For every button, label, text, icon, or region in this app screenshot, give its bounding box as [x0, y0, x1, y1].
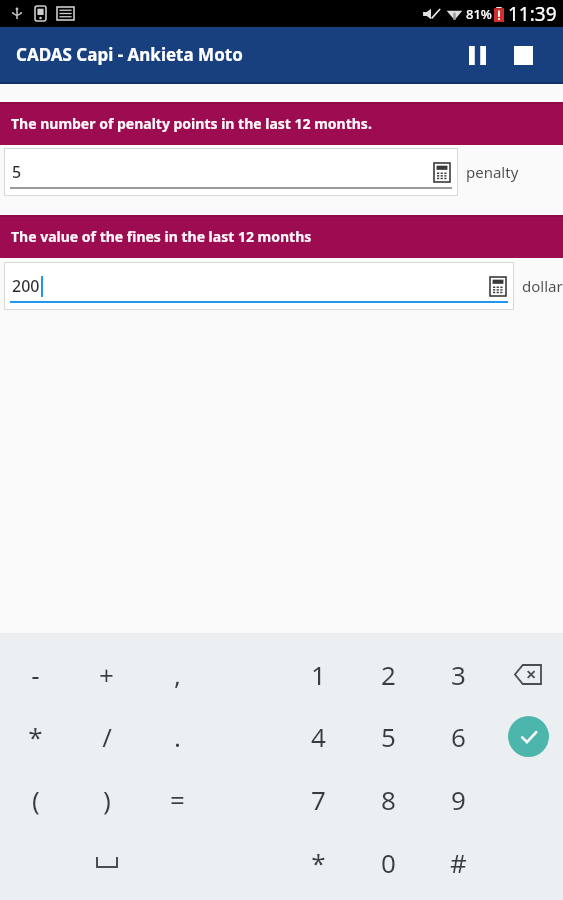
button[interactable]: 4 [283, 705, 353, 768]
button[interactable]: ) [71, 768, 142, 831]
staticText: 8 [381, 782, 396, 817]
staticText: . [174, 719, 181, 754]
button[interactable]: 9 [423, 768, 493, 831]
button[interactable]: Stop [501, 33, 545, 77]
button[interactable]: ( [0, 768, 71, 831]
button[interactable]: 5 [353, 705, 423, 768]
button[interactable]: 3 [423, 643, 493, 705]
button[interactable]: 1 [283, 643, 353, 705]
staticText: 2 [381, 657, 396, 692]
staticText: * [311, 845, 326, 880]
button[interactable]: The value of the fines in the last 12 mo… [0, 215, 563, 258]
other: Calculator [434, 163, 450, 182]
button[interactable]: Space [71, 831, 142, 894]
staticText: 9 [451, 782, 466, 817]
staticText: 81% [466, 5, 492, 23]
other: Calculator [490, 277, 506, 296]
staticText: 3 [451, 657, 466, 692]
button[interactable]: = [142, 768, 213, 831]
staticText: 11:39 [508, 1, 557, 27]
staticText: The number of penalty points in the last… [11, 114, 372, 133]
button[interactable]: 7 [283, 768, 353, 831]
button[interactable]: Backspace [493, 643, 563, 705]
button[interactable]: . [142, 705, 213, 768]
staticText: 7 [311, 782, 326, 817]
staticText: dollar [522, 276, 563, 296]
staticText: - [31, 657, 40, 692]
button[interactable]: , [142, 643, 213, 705]
button[interactable]: * [0, 705, 71, 768]
button[interactable]: * [283, 831, 353, 894]
staticText: * [28, 719, 43, 754]
button[interactable]: 0 [353, 831, 423, 894]
button[interactable]: 5 [4, 148, 458, 196]
button[interactable]: The number of penalty points in the last… [0, 102, 563, 145]
staticText: CADAS Capi - Ankieta Moto [16, 43, 243, 66]
staticText: # [450, 845, 467, 880]
button[interactable]: OK [493, 705, 563, 768]
staticText: 5 [381, 719, 396, 754]
staticText: 200 [12, 275, 40, 297]
button[interactable]: 8 [353, 768, 423, 831]
staticText: ) [103, 782, 111, 817]
button[interactable]: Pause [455, 33, 499, 77]
staticText: 5 [12, 161, 22, 183]
staticText: 1 [311, 657, 326, 692]
staticText: penalty points [466, 162, 563, 182]
staticText: The value of the fines in the last 12 mo… [11, 227, 312, 246]
button[interactable]: 200 [4, 262, 514, 310]
button[interactable]: + [71, 643, 142, 705]
button[interactable]: 2 [353, 643, 423, 705]
staticText: , [174, 657, 181, 692]
button[interactable]: 6 [423, 705, 493, 768]
button[interactable]: # [423, 831, 493, 894]
button[interactable]: / [71, 705, 142, 768]
staticText: 4 [311, 719, 326, 754]
staticText: = [170, 782, 185, 817]
staticText: + [99, 657, 114, 692]
staticText: 6 [451, 719, 466, 754]
staticText: 0 [381, 845, 396, 880]
staticText: / [102, 719, 112, 754]
staticText: ( [32, 782, 40, 817]
button[interactable]: - [0, 643, 71, 705]
